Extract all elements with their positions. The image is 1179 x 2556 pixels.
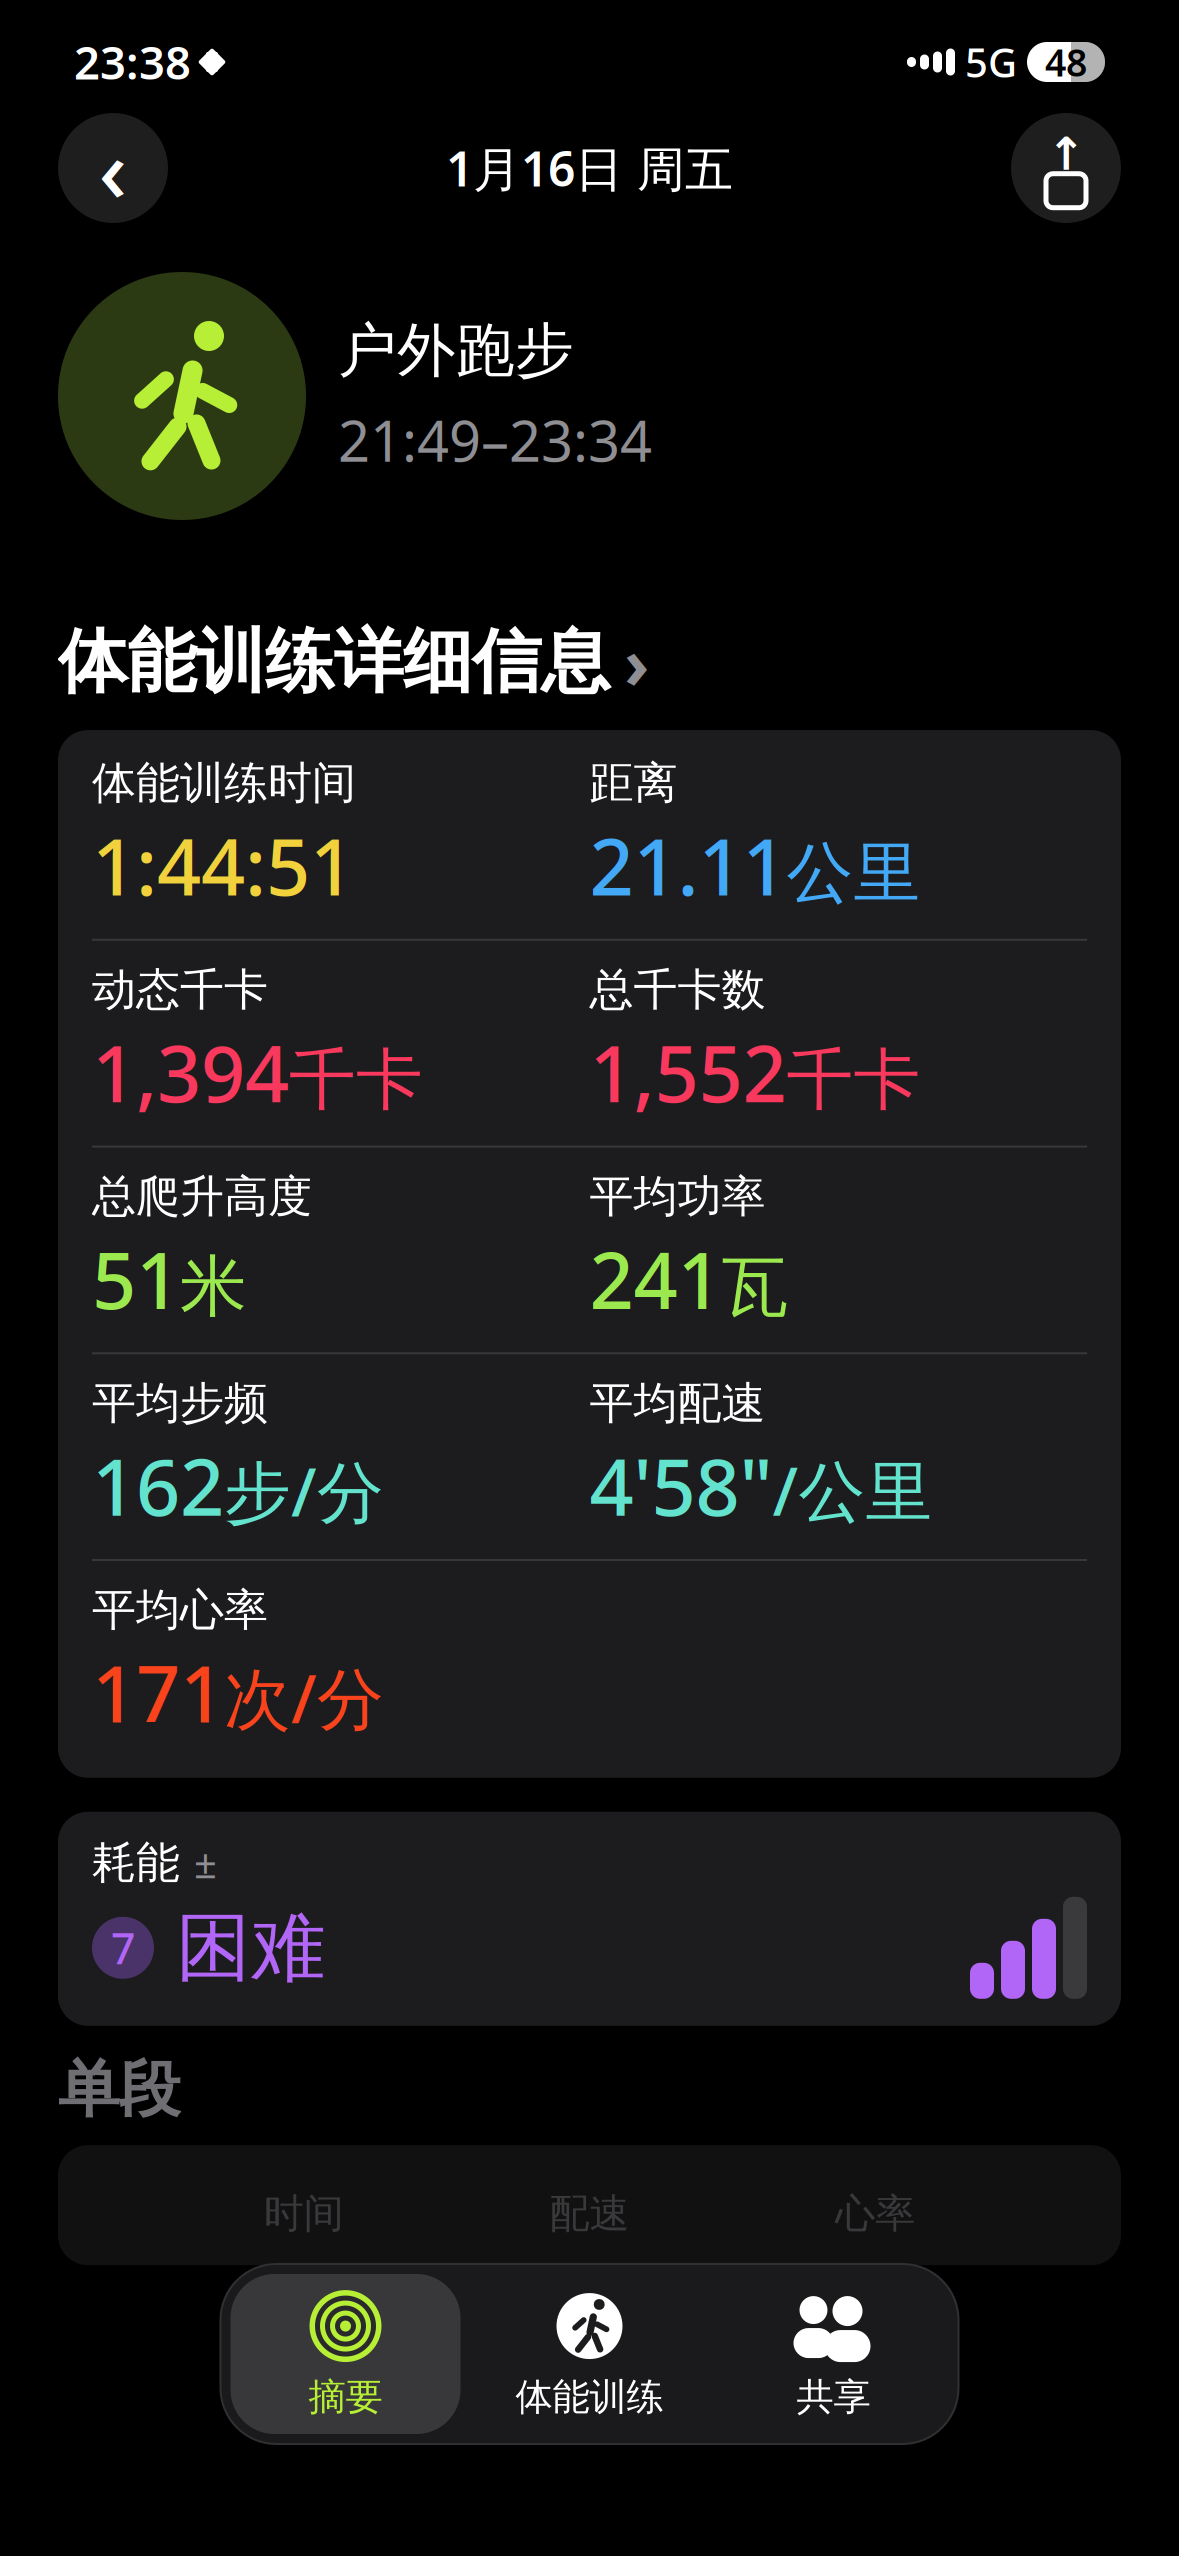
staticText: 48 xyxy=(1045,37,1087,87)
staticText: 总爬升高度 xyxy=(92,1169,312,1223)
staticText: ↑ xyxy=(1047,128,1085,180)
staticText: 平均心率 xyxy=(92,1583,268,1637)
staticText: 次/分 xyxy=(224,1653,384,1742)
staticText: 4'58" xyxy=(589,1434,772,1537)
staticText: 瓦 xyxy=(721,1246,788,1328)
staticText: 距离 xyxy=(589,756,677,810)
staticText: 7 xyxy=(111,1919,135,1976)
staticText: › xyxy=(624,616,649,708)
staticText: 千卡 xyxy=(786,1039,920,1121)
staticText: 21:49–23:34 xyxy=(338,403,652,477)
button[interactable]: 共享 xyxy=(1011,113,1121,223)
staticText: 5G xyxy=(965,35,1017,88)
staticText: ‹ xyxy=(98,110,127,226)
staticText: 步/分 xyxy=(224,1446,384,1535)
staticText: 241 xyxy=(589,1228,721,1330)
staticText: 体能训练详细信息 xyxy=(58,619,610,705)
staticText: /公里 xyxy=(772,1446,932,1534)
button[interactable]: 摘要 xyxy=(230,2274,460,2434)
staticText: 平均步频 xyxy=(92,1376,268,1430)
staticText: 共享 xyxy=(796,2374,870,2420)
staticText: 1,552 xyxy=(589,1021,786,1124)
staticText: 配速 xyxy=(549,2189,629,2238)
staticText: 体能训练时间 xyxy=(92,756,356,810)
staticText: 23:38 xyxy=(74,32,191,92)
staticText: 千卡 xyxy=(289,1039,423,1121)
staticText: ± xyxy=(194,1836,217,1889)
staticText: 单段 xyxy=(58,2052,180,2127)
staticText: 平均功率 xyxy=(589,1169,765,1223)
button[interactable]: 体能训练 xyxy=(474,2274,704,2434)
button[interactable]: 共享 xyxy=(718,2274,948,2434)
staticText: 1月16日 周五 xyxy=(446,136,733,200)
staticText: 困难 xyxy=(176,1902,326,1994)
button[interactable]: 耗能 xyxy=(58,1812,1121,2026)
staticText: 心率 xyxy=(835,2189,915,2238)
staticText: 动态千卡 xyxy=(92,963,268,1017)
staticText: 摘要 xyxy=(308,2374,382,2420)
staticText: 总千卡数 xyxy=(589,963,765,1017)
staticText: 162 xyxy=(92,1434,224,1537)
staticText: 平均配速 xyxy=(589,1376,765,1430)
staticText: 耗能 xyxy=(92,1836,180,1890)
staticText: 体能训练 xyxy=(515,2374,663,2420)
staticText: 公里 xyxy=(786,832,920,914)
staticText: 1,394 xyxy=(92,1021,289,1124)
staticText: 51 xyxy=(92,1228,180,1330)
staticText: 171 xyxy=(92,1641,224,1744)
staticText: 时间 xyxy=(264,2189,344,2238)
staticText: 21.11 xyxy=(589,814,786,917)
staticText: 户外跑步 xyxy=(338,315,574,387)
button[interactable]: 返回 xyxy=(58,110,168,226)
staticText: 米 xyxy=(180,1246,247,1328)
staticText: 1:44:51 xyxy=(92,814,354,917)
